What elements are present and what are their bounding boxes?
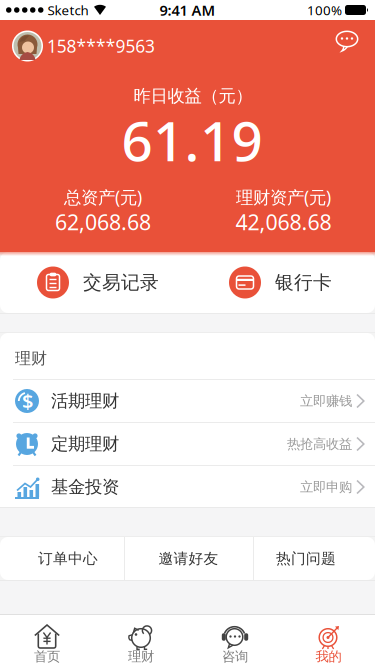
staticText: 立即申购 (300, 479, 352, 495)
staticText: 昨日收益（元） (133, 85, 252, 107)
staticText: 活期理财 (51, 390, 119, 412)
staticText: $ (22, 388, 33, 414)
button[interactable]: $ (0, 380, 375, 422)
staticText: 理财 (128, 648, 154, 665)
staticText: 100% (307, 1, 342, 19)
staticText: 基金投资 (51, 476, 119, 498)
staticText: 交易记录 (83, 271, 159, 294)
staticText: 理财 (15, 349, 47, 368)
staticText: 咨询 (222, 648, 248, 665)
button[interactable]: 基金投资 (0, 466, 375, 508)
button[interactable]: 邀请好友 (126, 537, 250, 580)
staticText: 理财资产(元) (236, 185, 331, 208)
staticText: 总资产(元) (64, 185, 142, 208)
staticText: Sketch (47, 1, 88, 19)
button[interactable]: 首页 (0, 615, 94, 667)
staticText: 61.19 (121, 104, 262, 176)
button[interactable]: 定期理财 (0, 423, 375, 465)
staticText: 立即赚钱 (300, 393, 352, 409)
staticText: 热抢高收益 (287, 436, 352, 452)
staticText: 热门问题 (276, 549, 336, 567)
staticText: 定期理财 (51, 433, 119, 455)
button[interactable]: Messages (335, 30, 358, 51)
staticText: 订单中心 (38, 549, 98, 567)
staticText: 银行卡 (275, 271, 332, 294)
button[interactable]: 158****9563 (12, 26, 232, 66)
staticText: 邀请好友 (158, 549, 218, 567)
staticText: 62,068.68 (55, 208, 151, 236)
button[interactable]: 交易记录 (37, 252, 197, 313)
button[interactable]: 银行卡 (229, 252, 375, 313)
button[interactable]: 订单中心 (6, 537, 130, 580)
staticText: 我的 (315, 648, 341, 665)
button[interactable]: 热门问题 (245, 537, 366, 580)
button[interactable]: 理财 (94, 615, 188, 667)
staticText: 9:41 AM (159, 0, 215, 20)
staticText: 158****9563 (47, 34, 155, 57)
staticText: 42,068.68 (235, 208, 331, 236)
staticText: 首页 (34, 648, 60, 665)
button[interactable]: 咨询 (188, 615, 282, 667)
button[interactable]: 我的 (282, 615, 375, 667)
